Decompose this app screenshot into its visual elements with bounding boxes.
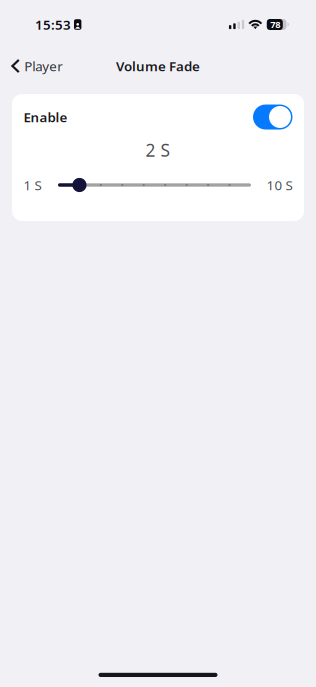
button[interactable]: Enable volume fade (253, 104, 292, 129)
button[interactable]: Player (0, 50, 73, 82)
staticText: 2 S (145, 138, 170, 161)
staticText: 10 S (266, 176, 292, 194)
staticText: Enable (23, 108, 67, 126)
staticText: 78 (270, 18, 280, 31)
staticText: Volume Fade (116, 57, 200, 75)
staticText: 1 S (23, 176, 41, 194)
staticText: Player (24, 57, 63, 75)
staticText: 15:53 (35, 16, 71, 33)
